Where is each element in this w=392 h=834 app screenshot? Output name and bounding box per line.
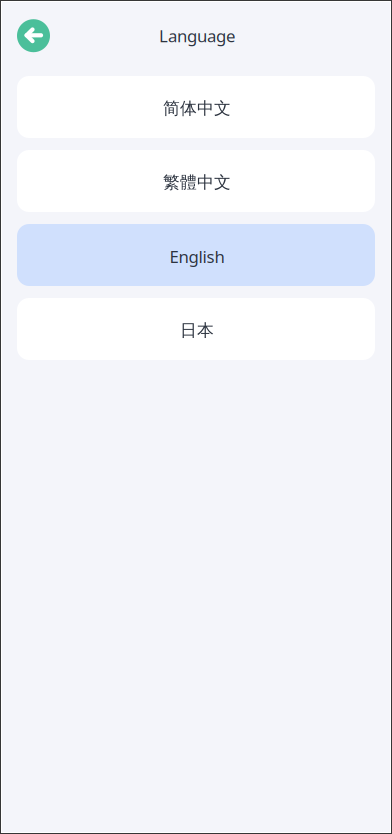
button[interactable]: 日本	[17, 298, 375, 360]
staticText: English	[169, 245, 224, 268]
staticText: 繁體中文	[163, 172, 231, 193]
button[interactable]: Back	[17, 19, 50, 52]
button[interactable]: 繁體中文	[17, 150, 375, 212]
button[interactable]: 简体中文	[17, 76, 375, 138]
staticText: 日本	[180, 320, 214, 341]
button[interactable]: English	[17, 224, 375, 286]
staticText: 简体中文	[163, 98, 231, 119]
staticText: Language	[159, 24, 235, 47]
